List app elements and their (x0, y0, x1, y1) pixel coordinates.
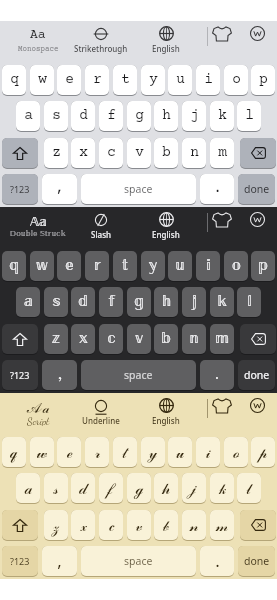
button[interactable]: k (210, 101, 234, 131)
button[interactable]: 𝕣 (85, 251, 109, 281)
button[interactable]: , (42, 360, 77, 390)
button[interactable]: 𝓊 (168, 437, 192, 467)
button[interactable]: 𝓎 (141, 437, 165, 467)
button[interactable]: 𝒸 (99, 510, 123, 540)
button[interactable]: Aa (7, 24, 69, 47)
button[interactable]: j (182, 101, 206, 131)
button[interactable]: 𝓍 (71, 510, 95, 540)
button[interactable]: 𝕕 (71, 287, 95, 317)
button[interactable]: 𝕝 (237, 287, 261, 317)
button[interactable]: l (237, 101, 261, 131)
button[interactable]: 𝓌 (30, 437, 54, 467)
button[interactable]: space (81, 174, 196, 204)
button[interactable] (210, 209, 234, 230)
button[interactable]: h (154, 101, 178, 131)
button[interactable] (240, 324, 276, 354)
button[interactable]: f (99, 101, 123, 131)
button[interactable]: 𝕟 (182, 324, 206, 354)
button[interactable]: v (127, 138, 151, 168)
button[interactable]: b (154, 138, 178, 168)
button[interactable]: done (238, 360, 275, 390)
button[interactable]: ?123 (2, 174, 38, 204)
button[interactable]: 𝕞 (210, 324, 234, 354)
button[interactable]: s (44, 101, 68, 131)
button[interactable]: 𝓋 (127, 510, 151, 540)
button[interactable]: o (224, 65, 248, 95)
button[interactable]: 𝓃 (182, 510, 206, 540)
button[interactable]: 𝕥 (113, 251, 137, 281)
button[interactable] (136, 395, 196, 416)
button[interactable]: a (16, 101, 40, 131)
button[interactable]: 𝕛 (182, 287, 206, 317)
button[interactable]: 𝕢 (2, 251, 26, 281)
button[interactable]: . (200, 546, 234, 576)
button[interactable]: 𝒷 (154, 510, 178, 540)
button[interactable]: 𝒜𝒶 (7, 396, 69, 419)
button[interactable]: n (182, 138, 206, 168)
button[interactable]: 𝕨 (30, 251, 54, 281)
button[interactable]: 𝕦 (168, 251, 192, 281)
button[interactable]: done (238, 546, 275, 576)
button[interactable]: c (99, 138, 123, 168)
button[interactable]: done (238, 174, 275, 204)
button[interactable]: u (168, 65, 192, 95)
button[interactable]: 𝕪 (141, 251, 165, 281)
button[interactable] (240, 138, 276, 168)
button[interactable]: 𝓆 (2, 437, 26, 467)
button[interactable]: space (81, 546, 196, 576)
button[interactable]: 𝒶 (16, 473, 40, 503)
button[interactable]: 𝓏 (44, 510, 68, 540)
button[interactable]: 𝓀 (210, 473, 234, 503)
button[interactable]: 𝕔 (99, 324, 123, 354)
button[interactable]: 𝓅 (251, 437, 275, 467)
button[interactable]: 𝕘 (127, 287, 151, 317)
button[interactable]: ?123 (2, 360, 38, 390)
button[interactable]: 𝓂 (210, 510, 234, 540)
button[interactable]: 𝒻 (99, 473, 123, 503)
button[interactable]: 𝕤 (44, 287, 68, 317)
button[interactable] (210, 395, 234, 416)
button[interactable]: p (251, 65, 275, 95)
button[interactable]: 𝕩 (71, 324, 95, 354)
button[interactable]: 𝕠 (224, 251, 248, 281)
button[interactable]: 𝕧 (127, 324, 151, 354)
button[interactable] (244, 209, 270, 230)
button[interactable]: 𝕗 (99, 287, 123, 317)
button[interactable]: m (210, 138, 234, 168)
button[interactable]: x (71, 138, 95, 168)
button[interactable]: 𝓈 (44, 473, 68, 503)
button[interactable] (2, 324, 38, 354)
button[interactable]: 𝕙 (154, 287, 178, 317)
button[interactable]: 𝒾 (196, 437, 220, 467)
button[interactable]: r (85, 65, 109, 95)
button[interactable] (240, 510, 276, 540)
button[interactable]: ?123 (2, 546, 38, 576)
button[interactable]: 𝓇 (85, 437, 109, 467)
button[interactable]: e (57, 65, 81, 95)
button[interactable] (2, 138, 38, 168)
button[interactable] (244, 23, 270, 44)
button[interactable] (70, 209, 132, 230)
button[interactable]: ℴ (224, 437, 248, 467)
button[interactable] (210, 23, 234, 44)
button[interactable]: ℯ (57, 437, 81, 467)
button[interactable] (136, 209, 196, 230)
button[interactable]: 𝕖 (57, 251, 81, 281)
button[interactable]: 𝒽 (154, 473, 178, 503)
button[interactable] (136, 23, 196, 44)
button[interactable]: 𝕒 (16, 287, 40, 317)
button[interactable]: ℊ (127, 473, 151, 503)
button[interactable]: , (42, 174, 77, 204)
button[interactable]: i (196, 65, 220, 95)
button[interactable]: z (44, 138, 68, 168)
button[interactable]: q (2, 65, 26, 95)
button[interactable] (244, 395, 270, 416)
button[interactable]: , (42, 546, 77, 576)
button[interactable]: . (200, 174, 234, 204)
button[interactable]: 𝕫 (44, 324, 68, 354)
button[interactable]: 𝓁 (237, 473, 261, 503)
button[interactable]: w (30, 65, 54, 95)
button[interactable] (70, 395, 132, 416)
button[interactable]: 𝕜 (210, 287, 234, 317)
button[interactable]: 𝕓 (154, 324, 178, 354)
